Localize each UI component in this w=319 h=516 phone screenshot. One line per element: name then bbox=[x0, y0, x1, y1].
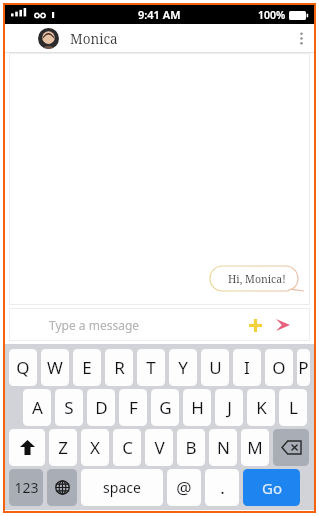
button[interactable]: I bbox=[233, 349, 261, 386]
button[interactable]: Type a message bbox=[9, 308, 310, 341]
button[interactable]: F bbox=[119, 389, 147, 426]
staticText: Z bbox=[58, 436, 68, 459]
staticText: Type a message bbox=[49, 317, 140, 333]
staticText: D bbox=[95, 396, 108, 419]
staticText: W bbox=[47, 356, 63, 379]
staticText: B bbox=[185, 436, 197, 459]
button[interactable]: S bbox=[55, 389, 83, 426]
button[interactable]: @ bbox=[167, 469, 201, 506]
staticText: A bbox=[32, 396, 43, 419]
button[interactable]: N bbox=[209, 429, 237, 466]
staticText: F bbox=[129, 396, 138, 419]
button[interactable]: . bbox=[205, 469, 239, 506]
button[interactable]: G bbox=[151, 389, 179, 426]
button[interactable]: Shift bbox=[9, 429, 45, 466]
button[interactable]: C bbox=[113, 429, 141, 466]
button[interactable]: L bbox=[279, 389, 307, 426]
staticText: C bbox=[122, 436, 133, 459]
staticText: Monica bbox=[70, 30, 118, 48]
staticText: K bbox=[256, 396, 267, 419]
button[interactable]: A bbox=[23, 389, 51, 426]
staticText: N bbox=[217, 436, 230, 459]
staticText: S bbox=[64, 396, 74, 419]
staticText: H bbox=[191, 396, 204, 419]
staticText: J bbox=[227, 396, 232, 419]
staticText: @ bbox=[176, 476, 192, 499]
staticText: X bbox=[90, 436, 100, 459]
button[interactable]: More options bbox=[288, 24, 314, 53]
button[interactable]: E bbox=[73, 349, 101, 386]
button[interactable]: W bbox=[41, 349, 69, 386]
button[interactable]: Q bbox=[9, 349, 37, 386]
button[interactable]: U bbox=[201, 349, 229, 386]
staticText: I bbox=[244, 356, 250, 379]
button[interactable]: H bbox=[183, 389, 211, 426]
staticText: M bbox=[247, 436, 263, 459]
button[interactable]: Hi, Monica! bbox=[210, 266, 304, 291]
staticText: T bbox=[146, 356, 156, 379]
staticText: V bbox=[154, 436, 165, 459]
staticText: Q bbox=[16, 356, 30, 379]
staticText: space bbox=[103, 478, 141, 497]
button[interactable]: T bbox=[137, 349, 165, 386]
button[interactable]: Send bbox=[272, 314, 294, 336]
button[interactable]: 123 bbox=[9, 469, 43, 506]
staticText: 9:41 AM bbox=[138, 7, 181, 22]
button[interactable]: V bbox=[145, 429, 173, 466]
staticText: O bbox=[272, 356, 286, 379]
staticText: 100% bbox=[258, 8, 286, 22]
staticText: Hi, Monica! bbox=[228, 272, 286, 286]
button[interactable]: Emoji / language bbox=[47, 469, 77, 506]
staticText: Y bbox=[178, 356, 188, 379]
button[interactable]: P bbox=[297, 349, 310, 386]
button[interactable]: Y bbox=[169, 349, 197, 386]
button[interactable]: D bbox=[87, 389, 115, 426]
staticText: P bbox=[298, 356, 309, 379]
button[interactable]: R bbox=[105, 349, 133, 386]
staticText: Go bbox=[262, 478, 282, 498]
button[interactable]: Go bbox=[243, 469, 300, 506]
staticText: R bbox=[114, 356, 125, 379]
button[interactable]: O bbox=[265, 349, 293, 386]
button[interactable]: K bbox=[247, 389, 275, 426]
staticText: L bbox=[289, 396, 298, 419]
button[interactable]: space bbox=[81, 469, 163, 506]
staticText: 123 bbox=[14, 478, 39, 497]
staticText: U bbox=[209, 356, 222, 379]
staticText: G bbox=[159, 396, 172, 419]
staticText: E bbox=[82, 356, 92, 379]
staticText: . bbox=[220, 476, 225, 499]
button[interactable]: Add attachment bbox=[244, 314, 266, 336]
button[interactable]: Z bbox=[49, 429, 77, 466]
button[interactable]: Profile photo bbox=[38, 28, 59, 49]
button[interactable]: J bbox=[215, 389, 243, 426]
button[interactable]: B bbox=[177, 429, 205, 466]
button[interactable]: Backspace bbox=[273, 429, 309, 466]
button[interactable]: M bbox=[241, 429, 269, 466]
button[interactable]: X bbox=[81, 429, 109, 466]
